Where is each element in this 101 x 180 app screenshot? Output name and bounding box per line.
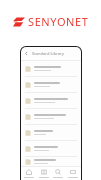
button[interactable] — [21, 157, 81, 166]
staticText: Standard Library — [32, 51, 64, 56]
button[interactable]: Back — [24, 51, 29, 56]
button[interactable]: Senyonet logo — [13, 14, 89, 29]
other: Search — [55, 169, 61, 175]
button[interactable]: Home — [22, 167, 36, 180]
button[interactable]: Search — [51, 167, 65, 180]
button[interactable]: Back — [21, 47, 81, 60]
button[interactable] — [21, 93, 81, 108]
button[interactable] — [21, 77, 81, 92]
button[interactable] — [21, 141, 81, 156]
other: More — [70, 169, 76, 175]
other: Home — [26, 169, 32, 175]
button[interactable]: Library — [37, 167, 51, 180]
button[interactable]: More — [66, 167, 80, 180]
other: Library — [41, 169, 47, 175]
button[interactable] — [21, 125, 81, 140]
button[interactable] — [21, 61, 81, 76]
staticText: SENYONET — [28, 14, 89, 29]
button[interactable] — [21, 109, 81, 124]
other: Senyonet logo — [13, 17, 25, 27]
